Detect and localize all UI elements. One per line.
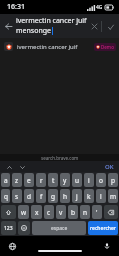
button[interactable]: i [84, 173, 94, 187]
button[interactable]: p [108, 173, 118, 187]
button[interactable]: x [31, 205, 42, 219]
button[interactable]: o [96, 173, 106, 187]
staticText: m [110, 192, 117, 201]
button[interactable]: ' [92, 205, 102, 219]
button[interactable]: 123 [1, 221, 16, 235]
staticText: g [51, 192, 55, 201]
button[interactable]: j [72, 189, 82, 203]
button[interactable]: m [108, 189, 118, 203]
staticText: v [59, 208, 63, 217]
button[interactable]: Back [0, 18, 16, 34]
staticText: c [47, 208, 51, 217]
button[interactable]: b [68, 205, 78, 219]
staticText: o [99, 176, 103, 185]
staticText: j [76, 192, 78, 201]
staticText: 123 [4, 225, 13, 232]
staticText: p [111, 176, 115, 185]
staticText: u [75, 176, 80, 185]
button[interactable]: f [36, 189, 46, 203]
staticText: search.brave.com [41, 155, 79, 161]
staticText: x [35, 208, 39, 217]
button[interactable]: z [12, 173, 22, 187]
button[interactable]: Shift [1, 205, 16, 219]
button[interactable]: OK [100, 161, 119, 172]
button[interactable]: ivermectin cancer juif [16, 16, 87, 36]
button[interactable]: n [80, 205, 90, 219]
staticText: a [4, 176, 8, 185]
button[interactable]: v [56, 205, 66, 219]
staticText: Demo [101, 44, 114, 50]
staticText: w [21, 208, 27, 217]
button[interactable]: h [60, 189, 70, 203]
button[interactable]: w [18, 205, 29, 219]
staticText: k [87, 192, 91, 201]
staticText: mensonge [16, 26, 51, 36]
button[interactable]: s [12, 189, 22, 203]
staticText: y [63, 176, 67, 185]
button[interactable]: d [24, 189, 34, 203]
staticText: h [63, 192, 68, 201]
staticText: ivermectin cancer juif [16, 16, 87, 26]
staticText: d [27, 192, 31, 201]
button[interactable]: a [1, 173, 10, 187]
staticText: e [27, 176, 31, 185]
staticText: f [40, 192, 43, 201]
staticText: espace [51, 225, 68, 232]
staticText: 16:31 [7, 2, 25, 12]
button[interactable]: ivermectin cancer juif mensonge [0, 38, 119, 55]
button[interactable]: Voice input [101, 240, 113, 252]
button[interactable]: Go [102, 18, 119, 35]
staticText: 4G [96, 4, 103, 11]
button[interactable]: rechercher [88, 221, 118, 235]
staticText: b [71, 208, 75, 217]
button[interactable]: q [1, 189, 10, 203]
staticText: ivermectin cancer juif mensonge [17, 43, 94, 51]
staticText: OK [105, 163, 114, 170]
button[interactable]: Next [17, 162, 27, 172]
button[interactable]: g [48, 189, 58, 203]
button[interactable]: e [24, 173, 34, 187]
button[interactable]: r [36, 173, 46, 187]
button[interactable]: c [44, 205, 54, 219]
staticText: i [88, 176, 90, 185]
staticText: z [15, 176, 19, 185]
staticText: rechercher [90, 225, 116, 232]
button[interactable]: u [72, 173, 82, 187]
staticText: q [4, 192, 8, 201]
button[interactable]: Change keyboard language [6, 240, 18, 252]
staticText: r [40, 176, 43, 185]
button[interactable]: Previous [4, 162, 14, 172]
button[interactable]: t [48, 173, 58, 187]
staticText: t [52, 176, 55, 185]
staticText: ' [96, 208, 98, 217]
button[interactable]: Emoji [18, 221, 30, 235]
button[interactable]: Clear [87, 19, 101, 33]
staticText: s [15, 192, 19, 201]
button[interactable]: l [96, 189, 106, 203]
button[interactable]: espace [32, 221, 86, 235]
button[interactable]: k [84, 189, 94, 203]
button[interactable]: y [60, 173, 70, 187]
staticText: n [83, 208, 88, 217]
button[interactable]: Backspace [104, 205, 118, 219]
staticText: l [100, 192, 102, 201]
